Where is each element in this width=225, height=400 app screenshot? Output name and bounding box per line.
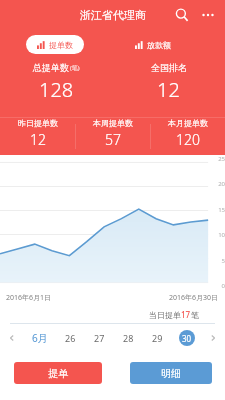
staticText: 30: [182, 333, 192, 344]
staticText: 浙江省代理商: [80, 8, 146, 22]
button[interactable]: 总提单数: [0, 62, 112, 103]
staticText: 6月: [32, 331, 48, 345]
button[interactable]: 本月提单数: [151, 118, 225, 149]
staticText: 27: [94, 332, 105, 344]
staticText: 15: [209, 206, 225, 214]
staticText: 2016年6月1日: [6, 293, 52, 303]
button[interactable]: 28: [114, 324, 143, 352]
staticText: 10: [209, 231, 225, 239]
staticText: 5: [209, 257, 225, 265]
button[interactable]: 30: [172, 324, 201, 352]
staticText: 120: [176, 130, 200, 149]
staticText: 29: [152, 332, 163, 344]
staticText: (笔): [70, 64, 80, 72]
staticText: 0: [209, 282, 225, 290]
staticText: 20: [209, 180, 225, 188]
staticText: 57: [105, 130, 121, 149]
staticText: 全国排名: [151, 62, 187, 73]
staticText: 25: [209, 155, 225, 163]
button[interactable]: 本周提单数: [76, 118, 150, 149]
button[interactable]: 29: [143, 324, 172, 352]
staticText: 本周提单数: [93, 118, 133, 128]
button[interactable]: 明细: [130, 362, 212, 384]
button[interactable]: Search: [171, 4, 193, 26]
button[interactable]: 昨日提单数: [0, 118, 75, 149]
button[interactable]: More options: [197, 4, 219, 26]
staticText: 昨日提单数: [18, 118, 58, 128]
button[interactable]: Next: [201, 324, 225, 352]
button[interactable]: 提单数: [26, 35, 84, 54]
staticText: 明细: [161, 367, 181, 380]
staticText: 本月提单数: [168, 118, 208, 128]
staticText: 12: [30, 130, 46, 149]
button[interactable]: 全国排名: [112, 62, 225, 103]
staticText: 12: [157, 76, 180, 103]
staticText: 2016年6月30日: [169, 293, 219, 303]
button[interactable]: 提单: [14, 362, 102, 384]
staticText: 提单: [48, 367, 68, 380]
staticText: 17: [181, 309, 191, 320]
button[interactable]: 27: [85, 324, 114, 352]
staticText: 放款额: [147, 40, 171, 50]
button[interactable]: 放款额: [124, 35, 182, 54]
button[interactable]: 6月: [24, 324, 56, 352]
staticText: 当日提单: [149, 310, 181, 320]
button[interactable]: Previous: [0, 324, 24, 352]
staticText: 提单数: [49, 40, 73, 50]
staticText: 28: [123, 332, 134, 344]
staticText: 26: [65, 332, 76, 344]
staticText: 总提单数: [33, 62, 69, 73]
staticText: 128: [39, 76, 74, 103]
button[interactable]: 26: [56, 324, 85, 352]
staticText: 笔: [191, 310, 199, 320]
